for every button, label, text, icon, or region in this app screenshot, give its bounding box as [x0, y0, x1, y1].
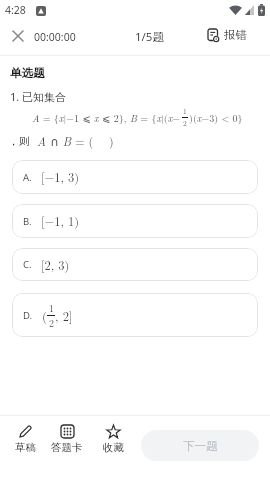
staticText: 1. 已知集合	[10, 89, 67, 104]
staticText: D.	[23, 309, 33, 322]
staticText: [−1, 1)	[41, 212, 80, 230]
staticText: 2	[49, 316, 54, 330]
staticText: A.	[23, 171, 32, 184]
staticText: 下一题	[183, 439, 218, 453]
button[interactable]: 收藏	[96, 424, 130, 454]
button[interactable]: 草稿	[8, 424, 42, 454]
staticText: 答题卡	[51, 441, 83, 454]
staticText: 00:00:00	[34, 30, 76, 44]
button[interactable]: 报错	[207, 27, 247, 42]
staticText: , 2]	[55, 307, 73, 325]
staticText: A = {x|−1 ⩽ x ⩽ 2}, B = {x|(x−	[32, 111, 181, 125]
staticText: 单选题	[10, 66, 45, 80]
staticText: 草稿	[15, 441, 36, 454]
button[interactable]: B.	[12, 204, 258, 238]
staticText: 1	[183, 106, 187, 117]
staticText: 报错	[224, 28, 247, 42]
button[interactable]: D.	[12, 293, 258, 337]
staticText: 收藏	[103, 441, 124, 454]
staticText: 1	[49, 301, 54, 315]
button[interactable]: 下一题	[141, 430, 259, 461]
staticText: )(x−3) < 0}	[189, 111, 243, 125]
button[interactable]: 答题卡	[49, 424, 85, 454]
staticText: (	[42, 307, 47, 325]
staticText: 1/5题	[135, 29, 164, 45]
button[interactable]: C.	[12, 248, 258, 281]
staticText: [−1, 3)	[41, 168, 80, 186]
staticText: C.	[23, 258, 32, 271]
button[interactable]: A.	[12, 160, 258, 194]
staticText: 4:28	[5, 3, 26, 17]
staticText: B.	[23, 215, 32, 228]
staticText: ，则	[8, 133, 33, 148]
button[interactable]	[8, 26, 28, 46]
staticText: A ∩ B = ( )	[33, 132, 114, 149]
staticText: [2, 3)	[41, 256, 70, 274]
staticText: 2	[183, 118, 187, 129]
